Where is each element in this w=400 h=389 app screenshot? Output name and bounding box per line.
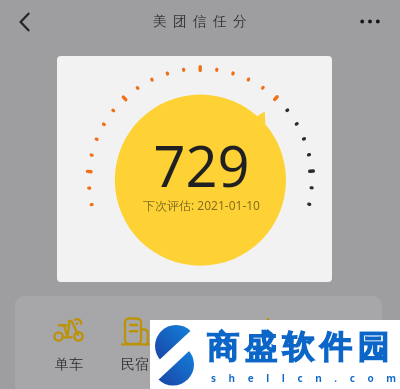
button[interactable]: 酒店 bbox=[306, 315, 362, 377]
button[interactable]: 美食 bbox=[240, 315, 296, 377]
staticText: 美团信任分 bbox=[150, 13, 250, 31]
button[interactable]: 门票 bbox=[173, 315, 229, 377]
staticText: 门票 bbox=[187, 356, 215, 374]
staticText: 下次评估: 2021-01-10 bbox=[143, 197, 260, 213]
staticText: 酒店 bbox=[320, 356, 348, 374]
staticText: 美食 bbox=[254, 356, 282, 374]
button[interactable]: 民宿 bbox=[107, 315, 163, 377]
staticText: 729 bbox=[153, 127, 250, 203]
button[interactable]: Back bbox=[7, 4, 43, 40]
staticText: 商盛软件园 bbox=[204, 327, 392, 367]
staticText: 民宿 bbox=[121, 356, 149, 374]
staticText: s h e l l c n . c o m bbox=[211, 371, 400, 385]
button[interactable]: 单车 bbox=[41, 315, 97, 377]
button[interactable]: More options bbox=[352, 4, 388, 40]
staticText: 单车 bbox=[55, 356, 83, 374]
button[interactable]: Trust score 729 bbox=[57, 56, 332, 282]
